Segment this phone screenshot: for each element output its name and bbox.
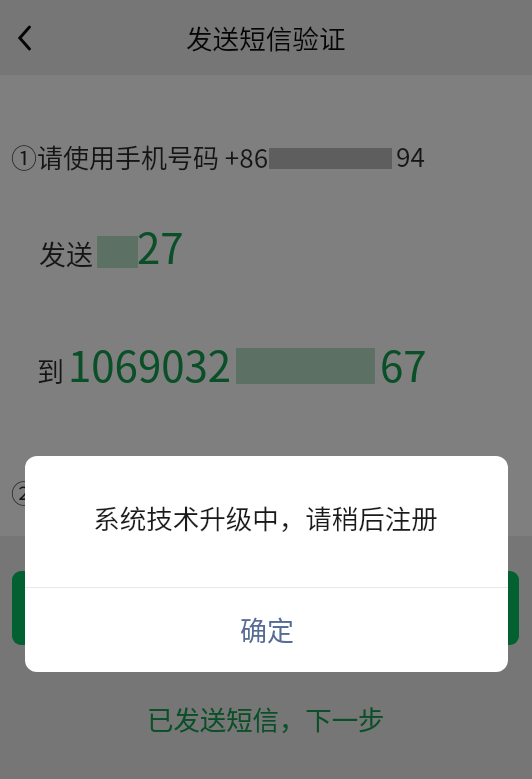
staticText: 1069032 bbox=[68, 333, 232, 394]
staticText: 到 bbox=[37, 351, 64, 390]
staticText: 发送 bbox=[39, 234, 93, 273]
staticText: 发送短信 bbox=[209, 588, 322, 629]
staticText: 系统技术升级中，请稍后注册 bbox=[93, 498, 438, 536]
staticText: 发送短信验证 bbox=[186, 18, 346, 57]
button[interactable]: 确定 bbox=[25, 588, 508, 672]
staticText: ①请使用手机号码 +86 bbox=[11, 138, 269, 176]
staticText: ② bbox=[11, 474, 37, 510]
button[interactable]: Back bbox=[0, 13, 50, 63]
staticText: 67 bbox=[380, 333, 427, 394]
staticText: 确定 bbox=[240, 610, 294, 649]
staticText: 已发送短信，下一步 bbox=[147, 699, 385, 737]
button[interactable]: 已发送短信，下一步 bbox=[0, 690, 532, 746]
staticText: 27 bbox=[137, 215, 184, 276]
staticText: 94 bbox=[396, 137, 425, 175]
button[interactable]: 发送短信 bbox=[12, 571, 519, 645]
